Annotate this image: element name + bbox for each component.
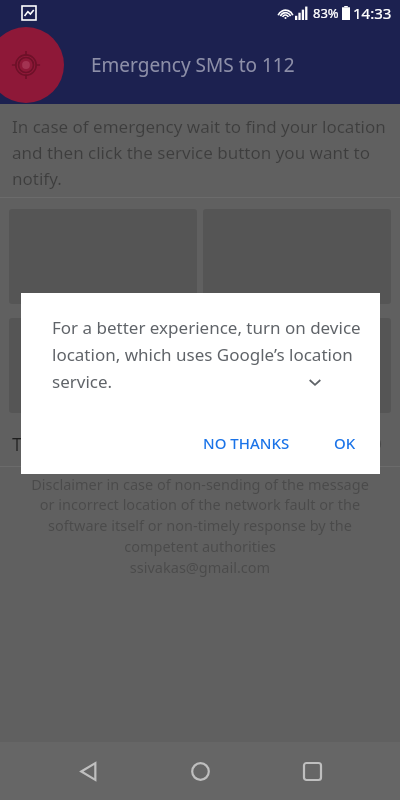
- button[interactable]: App logo: [0, 27, 64, 103]
- staticText: There are injured:: [12, 432, 162, 457]
- button[interactable]: [203, 318, 391, 413]
- staticText: 83%: [313, 4, 339, 22]
- staticText: NO THANKS: [203, 433, 290, 453]
- button[interactable]: Back: [64, 747, 112, 795]
- button[interactable]: [9, 318, 197, 413]
- staticText: 14:33: [353, 3, 392, 23]
- button[interactable]: Expand details: [308, 375, 322, 389]
- staticText: Disclaimer in case of non-sending of the…: [22, 474, 378, 578]
- button[interactable]: There are injured:: [0, 422, 400, 466]
- other: There are injured toggle: [340, 433, 382, 455]
- staticText: Emergency SMS to 112: [91, 52, 295, 78]
- button[interactable]: Recent apps: [288, 747, 336, 795]
- button[interactable]: NO THANKS: [195, 424, 298, 462]
- staticText: In case of emergency wait to find your l…: [12, 115, 390, 190]
- button[interactable]: [9, 209, 197, 304]
- button[interactable]: Home: [176, 747, 224, 795]
- staticText: OK: [334, 433, 356, 453]
- staticText: For a better experience, turn on device …: [52, 316, 362, 393]
- button[interactable]: [203, 209, 391, 304]
- button[interactable]: OK: [326, 424, 364, 462]
